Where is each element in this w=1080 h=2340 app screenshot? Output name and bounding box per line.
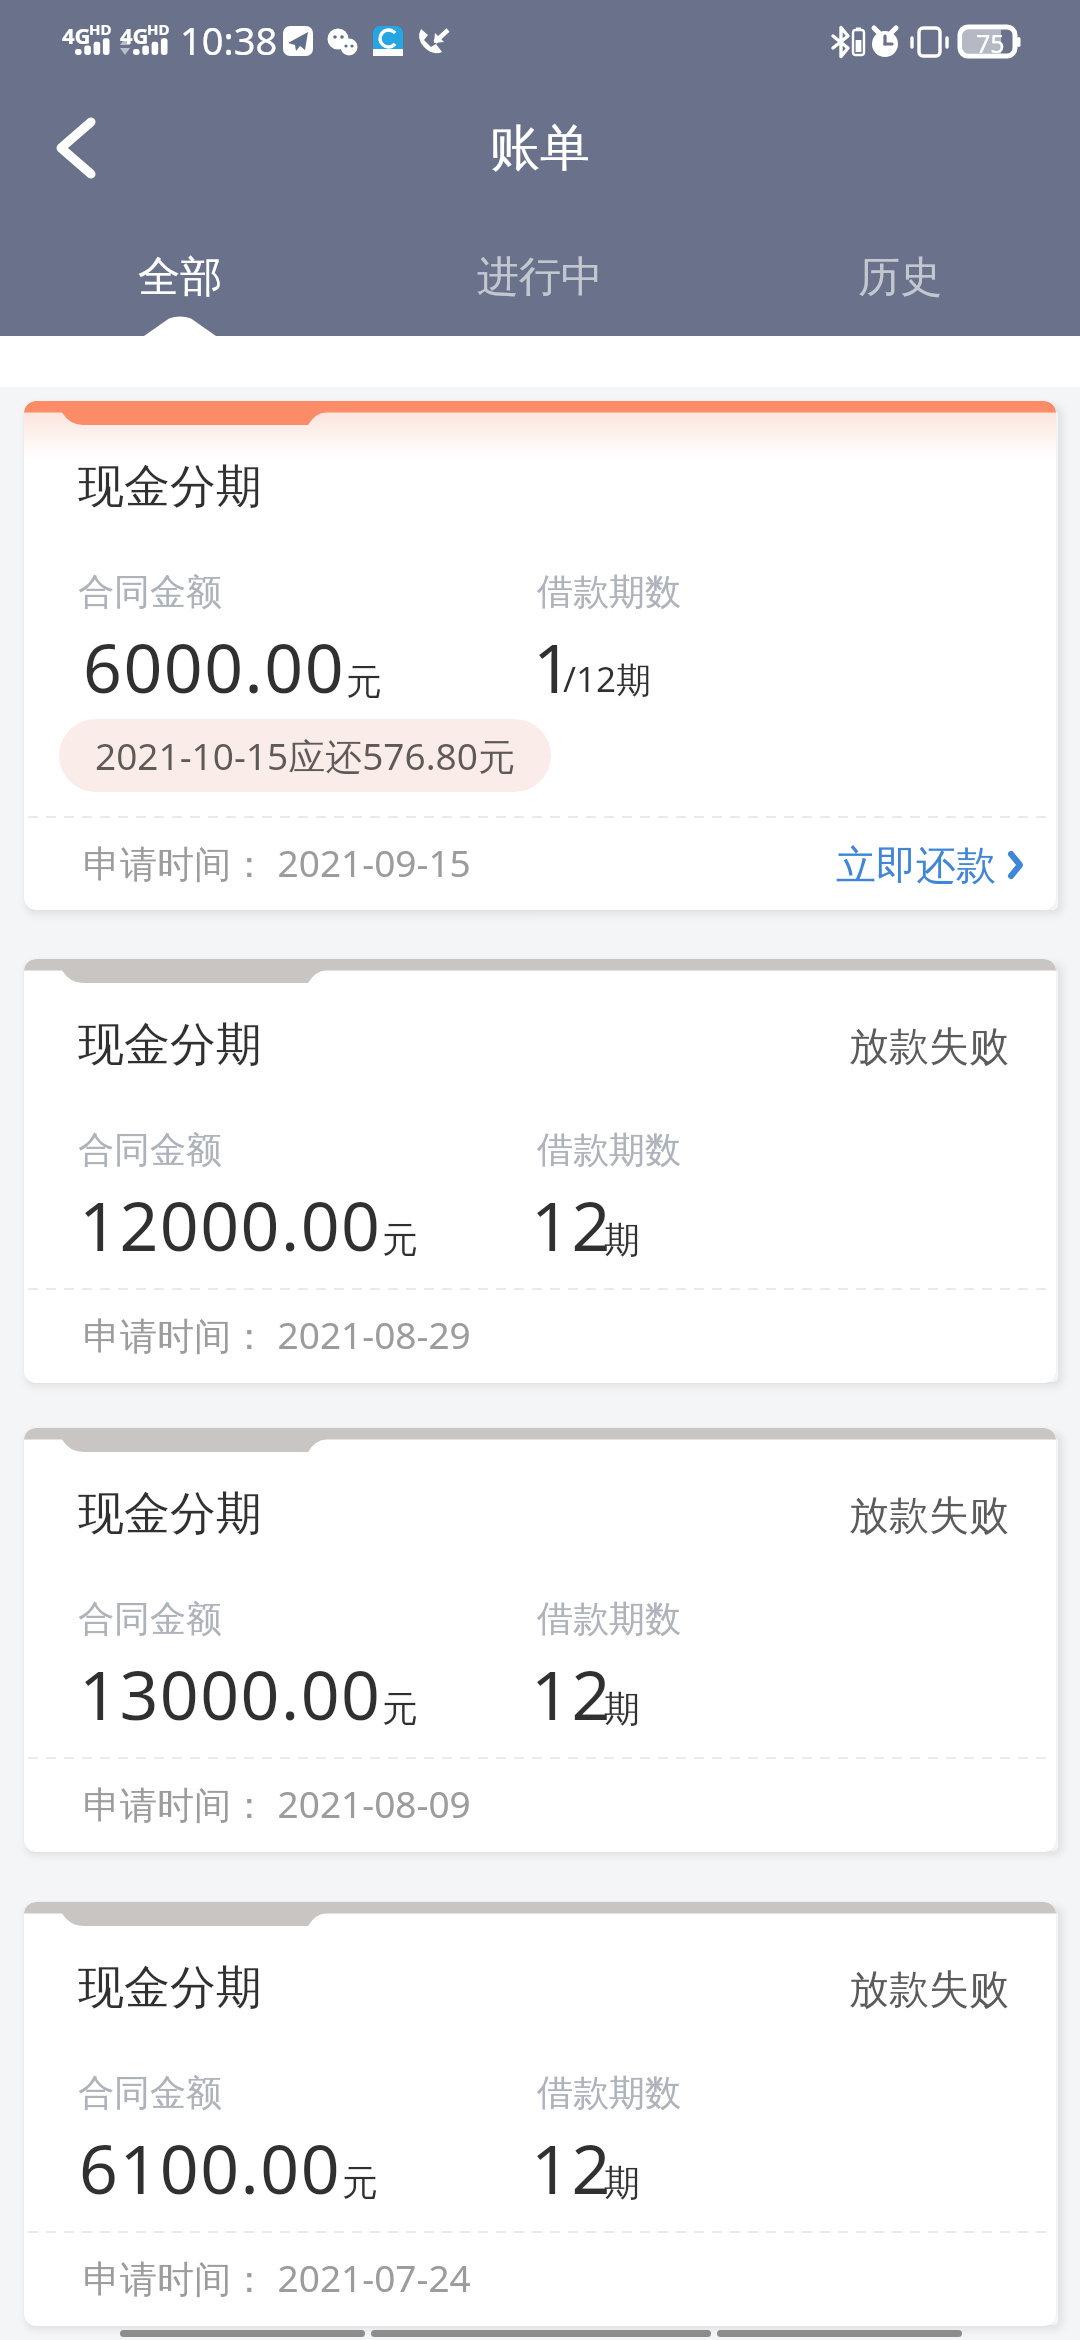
staticText: 4G [120,20,149,50]
staticText: 立即还款 [836,840,996,890]
staticText: 申请时间： 2021-08-09 [83,1778,471,1829]
button[interactable]: 现金分期 [24,401,1056,910]
staticText: 放款失败 [849,1964,1009,2014]
staticText: 现金分期 [78,1959,262,2017]
staticText: 合同金额 [78,1127,222,1172]
staticText: 合同金额 [78,569,222,614]
staticText: HD [89,19,112,39]
staticText: 12 [531,1647,612,1740]
staticText: 10:38 [180,14,278,66]
button[interactable]: 现金分期 [24,1902,1056,2326]
staticText: 借款期数 [537,1596,681,1641]
button[interactable]: 现金分期 [24,959,1056,1383]
staticText: 申请时间： 2021-09-15 [83,837,471,888]
staticText: 元 [342,2160,378,2205]
staticText: 期 [604,2160,640,2205]
staticText: /12期 [563,655,652,703]
button[interactable]: Recents [717,2330,962,2337]
staticText: 元 [346,659,382,704]
button[interactable]: 立即还款 [836,833,1023,897]
button[interactable]: 进行中 [360,234,720,320]
staticText: 期 [604,1686,640,1731]
staticText: 元 [382,1686,418,1731]
staticText: 借款期数 [537,1127,681,1172]
staticText: 4G [62,20,91,50]
staticText: 申请时间： 2021-07-24 [83,2252,471,2303]
button[interactable]: 历史 [720,234,1080,320]
staticText: 进行中 [477,251,603,304]
staticText: 12000.00 [79,1178,382,1271]
staticText: 6000.00 [83,620,346,713]
staticText: 元 [382,1217,418,1262]
button[interactable]: Back [26,103,126,193]
staticText: 现金分期 [78,1016,262,1074]
staticText: 12 [531,2121,612,2214]
button[interactable]: Back [120,2330,365,2337]
button[interactable]: 现金分期 [24,1428,1056,1852]
staticText: HD [147,19,170,39]
staticText: 期 [604,1217,640,1262]
staticText: 1 [533,620,572,713]
staticText: 现金分期 [78,458,262,516]
staticText: 借款期数 [537,569,681,614]
staticText: 12 [531,1178,612,1271]
staticText: 6100.00 [79,2121,342,2214]
staticText: 放款失败 [849,1021,1009,1071]
staticText: 历史 [858,251,942,304]
staticText: 全部 [138,251,222,304]
staticText: 放款失败 [849,1490,1009,1540]
staticText: 2021-10-15应还576.80元 [95,730,515,781]
staticText: 13000.00 [79,1647,382,1740]
staticText: 申请时间： 2021-08-29 [83,1309,471,1360]
button[interactable]: 全部 [0,234,360,320]
staticText: 合同金额 [78,1596,222,1641]
staticText: 账单 [490,117,590,180]
staticText: 借款期数 [537,2070,681,2115]
button[interactable]: Home [371,2330,711,2337]
staticText: 现金分期 [78,1485,262,1543]
staticText: 75 [976,26,1005,60]
staticText: 合同金额 [78,2070,222,2115]
